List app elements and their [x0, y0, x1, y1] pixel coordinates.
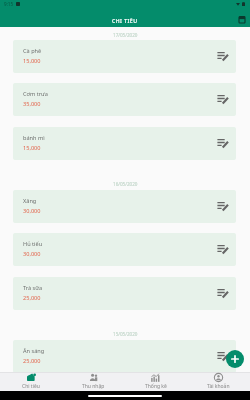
staticText: Thu nhập — [82, 383, 105, 390]
button[interactable]: Select date — [236, 14, 247, 25]
staticText: 16/05/2020 — [113, 181, 138, 187]
staticText: Cơm trưa — [23, 90, 48, 98]
staticText: 15,000 — [23, 144, 41, 152]
staticText: 15/05/2020 — [113, 331, 138, 337]
button[interactable]: Tài khoản — [187, 372, 250, 391]
staticText: Ăn sáng — [23, 347, 45, 355]
staticText: 35,000 — [23, 100, 41, 108]
staticText: 17/05/2020 — [113, 32, 138, 38]
button[interactable]: Cà phê — [13, 40, 236, 73]
staticText: 25,000 — [23, 294, 41, 302]
button[interactable]: Xăng — [13, 190, 236, 223]
staticText: Cà phê — [23, 47, 42, 55]
button[interactable]: Trà sữa — [13, 277, 236, 310]
button[interactable]: Thống kê — [124, 372, 187, 391]
button[interactable]: Hủ tiếu — [13, 233, 236, 266]
staticText: Trà sữa — [23, 284, 43, 292]
staticText: Tài khoản — [207, 383, 230, 390]
staticText: Thống kê — [145, 383, 167, 390]
staticText: 25,000 — [23, 357, 41, 365]
button[interactable]: Cơm trưa — [13, 83, 236, 116]
button[interactable]: Thu nhập — [62, 372, 124, 391]
staticText: 30,000 — [23, 250, 41, 258]
button[interactable]: Ăn sáng — [13, 340, 236, 373]
staticText: CHI TIÊU — [112, 17, 138, 24]
button[interactable]: Chi tiêu — [0, 372, 62, 391]
staticText: bánh mì — [23, 134, 45, 142]
button[interactable]: bánh mì — [13, 127, 236, 160]
staticText: 9:15 — [4, 1, 14, 7]
staticText: Xăng — [23, 197, 37, 205]
button[interactable]: Add expense — [226, 350, 244, 368]
staticText: 15,000 — [23, 57, 41, 65]
staticText: Chi tiêu — [22, 383, 40, 390]
staticText: Hủ tiếu — [23, 240, 43, 248]
staticText: 30,000 — [23, 207, 41, 215]
